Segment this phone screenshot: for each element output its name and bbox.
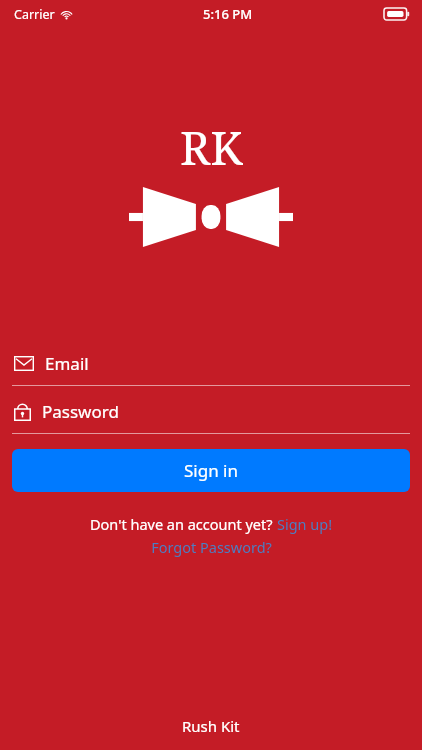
button[interactable]: Password (0, 389, 422, 433)
button[interactable]: Forgot Password? (151, 537, 272, 557)
staticText: Sign up! (277, 514, 333, 534)
staticText: Rush Kit (182, 716, 240, 736)
staticText: Carrier (14, 6, 55, 23)
staticText: 5:16 PM (203, 5, 253, 23)
staticText: Forgot Password? (151, 537, 272, 557)
button[interactable]: Sign in (12, 449, 410, 492)
staticText: Password (42, 400, 119, 423)
button[interactable]: Sign up! (277, 514, 333, 534)
staticText: RK (180, 116, 243, 179)
staticText: Email (45, 352, 89, 375)
staticText: Sign in (184, 459, 238, 482)
button[interactable]: Email (0, 341, 422, 385)
staticText: Don't have an account yet? (90, 514, 277, 534)
